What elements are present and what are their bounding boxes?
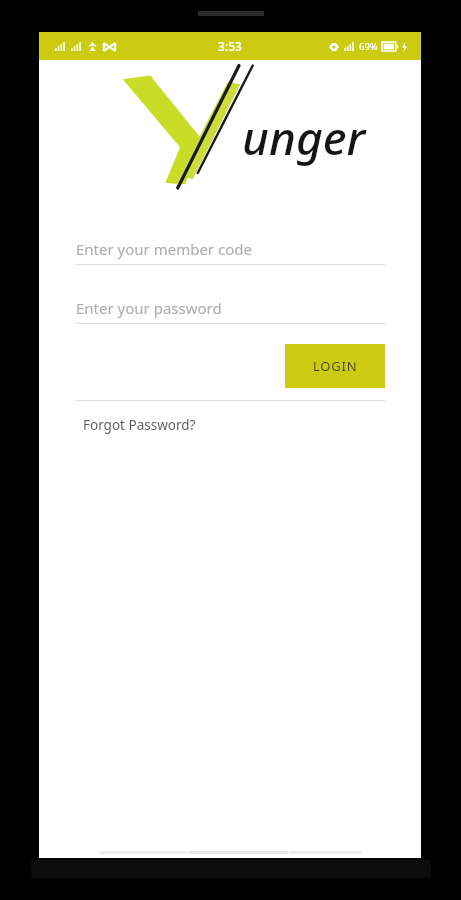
staticText: Enter your password [76,298,222,318]
button[interactable]: LOGIN [285,344,385,388]
staticText: LOGIN [313,357,358,375]
staticText: Forgot Password? [83,416,196,434]
staticText: unger [242,106,366,169]
staticText: 3:53 [218,38,242,54]
staticText: 69% [359,40,378,53]
button[interactable]: Forgot Password? [83,416,196,434]
button[interactable]: Enter your member code [76,234,385,264]
staticText: Enter your member code [76,239,252,259]
button[interactable]: Enter your password [76,293,385,323]
